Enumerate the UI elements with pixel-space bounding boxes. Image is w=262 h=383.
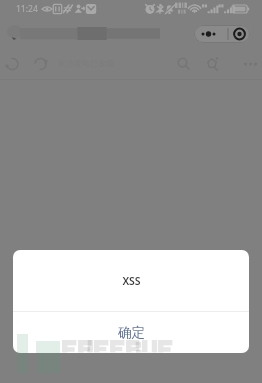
button[interactable]: AI search [202, 54, 223, 75]
button[interactable]: More and close [194, 25, 250, 43]
other: App logo [7, 25, 22, 40]
staticText: 11:24 [16, 3, 38, 15]
button[interactable]: 确定 [13, 312, 249, 353]
staticText: XSS [122, 274, 141, 288]
staticText: 确定 [118, 324, 145, 341]
